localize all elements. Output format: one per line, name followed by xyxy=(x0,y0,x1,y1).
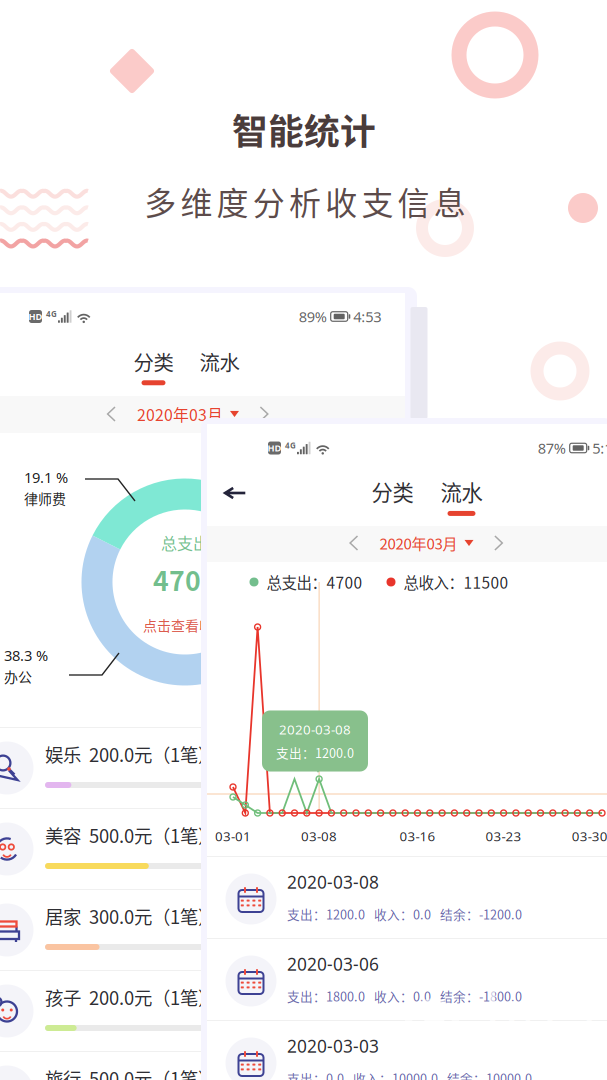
staticText: 03-30 xyxy=(572,827,607,845)
staticText: 03-23 xyxy=(486,827,522,845)
staticText: 律师费 xyxy=(24,488,66,508)
staticText: 87% xyxy=(538,438,566,458)
staticText: 息 xyxy=(434,178,466,224)
staticText: 维 xyxy=(180,178,212,224)
staticText: 支 xyxy=(361,178,393,224)
staticText: 旅行 500.0元（1笔） xyxy=(45,1065,216,1080)
staticText: 娱乐 200.0元（1笔） xyxy=(45,741,216,767)
staticText: 2020年03月 xyxy=(137,402,223,425)
staticText: 析 xyxy=(289,178,321,224)
staticText: HD xyxy=(28,310,42,323)
staticText: 03-01 xyxy=(215,827,251,845)
staticText: 支出：1200.0 xyxy=(276,743,354,761)
staticText: 19.1 % xyxy=(24,468,68,487)
button[interactable]: Previous month xyxy=(339,535,369,551)
button[interactable]: 居家 300.0元（1笔） xyxy=(0,889,405,970)
button[interactable]: 2020-03-06 xyxy=(207,938,607,1020)
button[interactable]: 娱乐 200.0元（1笔） xyxy=(0,727,405,808)
staticText: 2020-03-06 xyxy=(287,952,379,975)
staticText: 2020-03-03 xyxy=(287,1034,379,1057)
staticText: 流水 xyxy=(199,347,239,376)
staticText: 总支出 xyxy=(161,531,209,554)
staticText: 4700 xyxy=(153,560,217,599)
button[interactable]: 流水 xyxy=(440,476,482,516)
button[interactable]: Back xyxy=(212,476,257,510)
staticText: 总收入：11500 xyxy=(403,571,508,593)
button[interactable]: 旅行 500.0元（1笔） xyxy=(0,1051,405,1080)
staticText: 分类 xyxy=(133,347,173,376)
staticText: 孩子 200.0元（1笔） xyxy=(45,984,216,1010)
button[interactable]: 分类 xyxy=(133,347,173,385)
staticText: HD xyxy=(267,442,281,454)
staticText: 美容 500.0元（1笔） xyxy=(45,822,216,848)
button[interactable]: 2020-03-08 xyxy=(207,856,607,938)
staticText: 居家 300.0元（1笔） xyxy=(45,903,216,929)
staticText: 支出：0.0 收入：10000.0 结余：10000.0 xyxy=(287,1069,532,1080)
staticText: 03-08 xyxy=(301,827,337,845)
staticText: 38.3 % xyxy=(4,646,48,665)
staticText: 4:53 xyxy=(353,307,381,326)
staticText: 多 xyxy=(144,178,176,224)
staticText: 信 xyxy=(398,178,430,224)
staticText: 03-16 xyxy=(399,827,435,845)
button[interactable]: 2020年03月 xyxy=(127,402,249,425)
staticText: 2020-03-08 xyxy=(279,720,351,738)
staticText: 5:10 xyxy=(592,438,607,458)
button[interactable]: 2020-03-03 xyxy=(207,1020,607,1080)
staticText: 2020-03-08 xyxy=(287,870,379,893)
staticText: 总支出：4700 xyxy=(266,571,362,593)
staticText: 点击查看收入 xyxy=(143,615,227,635)
staticText: 分类 xyxy=(371,476,413,507)
button[interactable]: Next month xyxy=(249,406,280,422)
staticText: 89% xyxy=(299,307,327,326)
button[interactable]: 美容 500.0元（1笔） xyxy=(0,808,405,889)
button[interactable]: 孩子 200.0元（1笔） xyxy=(0,970,405,1051)
staticText: 支出：1800.0 收入：0.0 结余：-1800.0 xyxy=(287,987,522,1005)
button[interactable]: Next month xyxy=(483,535,514,551)
button[interactable]: 流水 xyxy=(199,347,239,385)
button[interactable]: 2020年03月 xyxy=(369,532,483,554)
button[interactable]: Previous month xyxy=(96,406,127,422)
staticText: 七叶子 xyxy=(477,978,607,1036)
staticText: 支出：1200.0 收入：0.0 结余：-1200.0 xyxy=(287,905,522,923)
staticText: 办公 xyxy=(4,666,32,686)
staticText: 收 xyxy=(325,178,357,224)
staticText: 分 xyxy=(253,178,285,224)
staticText: 2020年03月 xyxy=(379,532,457,554)
button[interactable]: 分类 xyxy=(371,476,413,516)
staticText: 度 xyxy=(217,178,249,224)
staticText: 流水 xyxy=(440,476,482,507)
staticText: 4G xyxy=(46,309,57,319)
staticText: 4G xyxy=(285,440,296,451)
staticText: 智能统计 xyxy=(232,103,376,155)
